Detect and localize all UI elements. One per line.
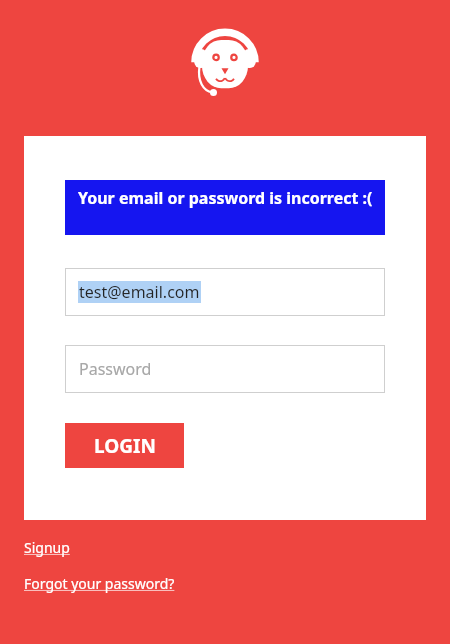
button[interactable]: Password xyxy=(65,345,385,393)
other: App logo xyxy=(193,28,257,98)
button[interactable]: Forgot your password? xyxy=(24,574,175,593)
staticText: Signup xyxy=(24,538,70,557)
staticText: LOGIN xyxy=(94,433,156,459)
button[interactable]: LOGIN xyxy=(65,423,184,468)
staticText: Forgot your password? xyxy=(24,574,175,593)
staticText: test@email.com xyxy=(79,281,200,303)
staticText: Password xyxy=(79,358,152,380)
button[interactable]: Signup xyxy=(24,538,70,557)
button[interactable]: test@email.com xyxy=(65,268,385,316)
staticText: Your email or password is incorrect :( xyxy=(78,187,374,209)
button[interactable]: Your email or password is incorrect :( xyxy=(65,180,385,235)
